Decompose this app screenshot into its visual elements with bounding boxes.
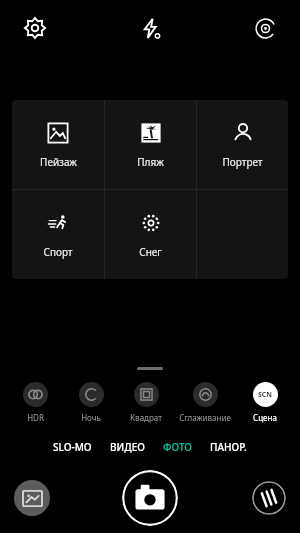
button[interactable]: SCN bbox=[239, 382, 291, 423]
button[interactable]: Shutter bbox=[122, 470, 178, 526]
button[interactable]: Live photo bbox=[248, 11, 282, 45]
button[interactable]: SLO-MO bbox=[51, 437, 94, 457]
staticText: ФОТО bbox=[163, 440, 192, 454]
button[interactable]: Снег bbox=[105, 190, 196, 279]
staticText: Пляж bbox=[137, 155, 164, 169]
staticText: SCN bbox=[258, 390, 273, 400]
staticText: Ночь bbox=[81, 412, 101, 423]
button[interactable]: Gallery bbox=[14, 480, 50, 516]
staticText: ПАНОР. bbox=[210, 440, 247, 454]
button[interactable]: ВИДЕО bbox=[108, 437, 147, 457]
button[interactable]: Спорт bbox=[12, 190, 104, 279]
staticText: Пейзаж bbox=[40, 155, 77, 169]
staticText: SLO-MO bbox=[53, 440, 92, 454]
button[interactable]: ПАНОР. bbox=[208, 437, 249, 457]
staticText: ВИДЕО bbox=[110, 440, 145, 454]
button[interactable]: Settings bbox=[18, 11, 52, 45]
staticText: Портрет bbox=[222, 155, 263, 169]
button[interactable]: Flash off bbox=[133, 11, 167, 45]
staticText: Спорт bbox=[43, 245, 73, 259]
staticText: Снег bbox=[139, 245, 162, 259]
staticText: Квадрат bbox=[130, 412, 162, 423]
button[interactable]: Ночь bbox=[65, 382, 117, 423]
staticText: HDR bbox=[27, 412, 44, 423]
button[interactable]: HDR bbox=[9, 382, 61, 423]
button[interactable]: Filters bbox=[252, 481, 286, 515]
button[interactable]: Пляж bbox=[105, 100, 196, 189]
staticText: Сглаживание bbox=[179, 412, 231, 423]
button[interactable]: Пейзаж bbox=[12, 100, 104, 189]
button[interactable]: Сглаживание bbox=[175, 382, 235, 423]
button[interactable]: ФОТО bbox=[161, 437, 194, 457]
button[interactable]: Портрет bbox=[197, 100, 288, 189]
button[interactable]: Квадрат bbox=[120, 382, 172, 423]
staticText: Сцена bbox=[253, 412, 277, 423]
